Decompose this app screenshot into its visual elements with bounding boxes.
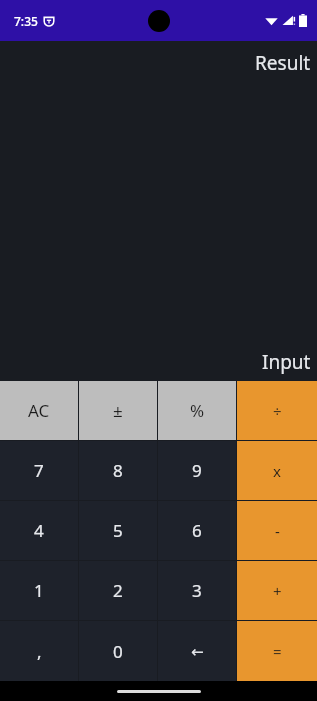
button[interactable]: 2 — [79, 561, 157, 620]
staticText: = — [273, 641, 282, 661]
staticText: 1 — [34, 579, 44, 602]
staticText: 6 — [192, 519, 202, 542]
staticText: ± — [113, 399, 123, 422]
staticText: 3 — [192, 579, 202, 602]
button[interactable]: , — [0, 621, 78, 681]
staticText: 2 — [113, 579, 123, 602]
button[interactable]: + — [237, 561, 317, 620]
button[interactable]: % — [158, 381, 236, 440]
staticText: AC — [28, 399, 50, 422]
staticText: Result — [255, 50, 311, 76]
staticText: + — [273, 581, 282, 601]
button[interactable]: 9 — [158, 441, 236, 500]
staticText: 0 — [113, 640, 123, 663]
staticText: ← — [191, 643, 204, 660]
button[interactable]: Backspace — [158, 621, 236, 681]
staticText: - — [275, 521, 280, 541]
staticText: 4 — [34, 519, 44, 542]
button[interactable]: 6 — [158, 501, 236, 560]
staticText: 7 — [34, 459, 44, 482]
staticText: 8 — [113, 459, 123, 482]
staticText: , — [37, 640, 42, 663]
staticText: 7:35 — [14, 13, 38, 29]
button[interactable]: x — [237, 441, 317, 500]
staticText: 5 — [113, 519, 123, 542]
button[interactable]: 7 — [0, 441, 78, 500]
staticText: Input — [262, 349, 311, 375]
staticText: x — [273, 461, 281, 481]
button[interactable]: = — [237, 621, 317, 681]
staticText: % — [190, 399, 205, 422]
button[interactable]: 5 — [79, 501, 157, 560]
button[interactable]: 3 — [158, 561, 236, 620]
staticText: 9 — [192, 459, 202, 482]
staticText: ÷ — [273, 401, 282, 421]
button[interactable]: 1 — [0, 561, 78, 620]
button[interactable]: ÷ — [237, 381, 317, 440]
button[interactable]: 8 — [79, 441, 157, 500]
button[interactable]: 0 — [79, 621, 157, 681]
button[interactable]: AC — [0, 381, 78, 440]
button[interactable]: - — [237, 501, 317, 560]
button[interactable]: ± — [79, 381, 157, 440]
button[interactable]: 4 — [0, 501, 78, 560]
